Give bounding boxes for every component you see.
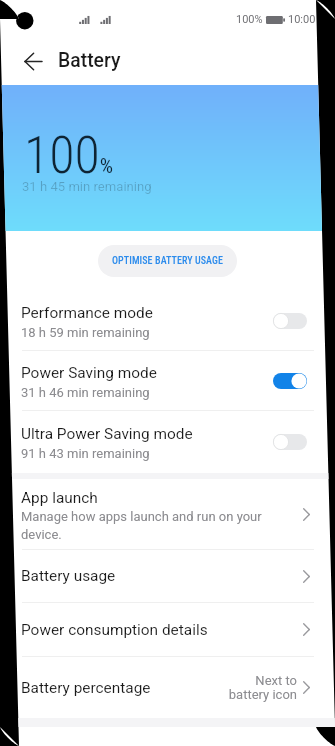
- button[interactable]: Battery percentage: [0, 657, 335, 718]
- staticText: Battery percentage: [21, 679, 228, 697]
- staticText: Power Saving mode: [21, 364, 157, 382]
- staticText: 31 h 45 min remaining: [22, 179, 152, 194]
- staticText: Manage how apps launch and run on your d…: [21, 509, 283, 542]
- staticText: 10:00: [288, 13, 316, 26]
- button[interactable]: App launch: [0, 479, 335, 550]
- button[interactable]: Power Saving mode: [0, 351, 335, 411]
- staticText: Performance mode: [21, 304, 153, 322]
- staticText: Battery: [58, 49, 121, 72]
- button[interactable]: Back: [14, 42, 52, 80]
- staticText: App launch: [21, 489, 98, 507]
- staticText: Next to battery icon: [228, 673, 297, 703]
- button[interactable]: Performance mode: [0, 291, 335, 351]
- staticText: Power consumption details: [21, 621, 303, 639]
- staticText: 100%: [24, 125, 114, 186]
- staticText: 31 h 46 min remaining: [21, 385, 150, 400]
- staticText: 91 h 43 min remaining: [21, 446, 150, 461]
- staticText: Ultra Power Saving mode: [21, 425, 193, 443]
- staticText: 100%: [236, 13, 263, 26]
- staticText: OPTIMISE BATTERY USAGE: [112, 255, 223, 267]
- staticText: 18 h 59 min remaining: [21, 325, 150, 340]
- button[interactable]: Battery usage: [0, 550, 335, 603]
- button[interactable]: Power consumption details: [0, 603, 335, 657]
- button[interactable]: OPTIMISE BATTERY USAGE: [98, 245, 237, 277]
- staticText: Battery usage: [21, 567, 303, 585]
- button[interactable]: Ultra Power Saving mode: [0, 411, 335, 473]
